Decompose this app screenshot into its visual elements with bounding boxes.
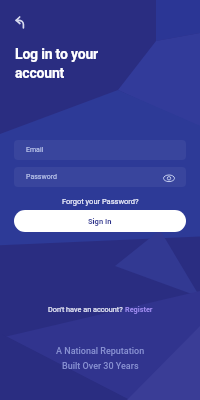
staticText: Log in to your account — [15, 46, 98, 81]
button[interactable]: Forgot your Password? — [0, 196, 200, 207]
staticText: Sign In — [88, 217, 112, 226]
staticText: Register — [125, 305, 153, 314]
button[interactable]: Don't have an account? — [0, 304, 200, 315]
staticText: Forgot your Password? — [62, 197, 139, 206]
staticText: Password — [26, 173, 57, 181]
button[interactable]: Password — [14, 167, 186, 187]
button[interactable]: Email — [14, 140, 186, 160]
staticText: Email — [26, 146, 44, 154]
button[interactable] — [8, 8, 32, 32]
staticText: Built Over 30 Years — [62, 361, 139, 372]
staticText: Don't have an account? — [48, 305, 125, 314]
button[interactable]: Sign In — [14, 210, 186, 232]
staticText: A National Reputation — [56, 346, 145, 357]
